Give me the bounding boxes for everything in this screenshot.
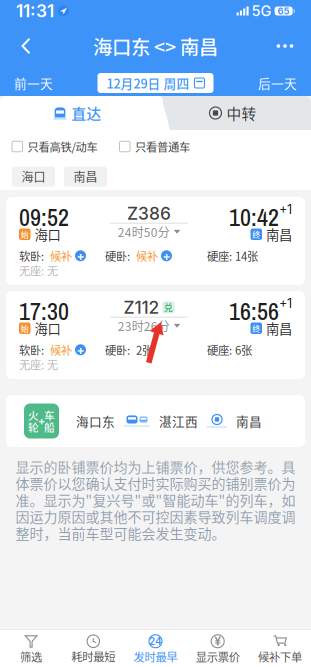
staticText: 轮 [28,421,39,432]
staticText: 10:42 [229,204,279,230]
staticText: 软卧: [19,344,47,355]
staticText: 24时50分 [118,226,170,238]
staticText: 候补 [50,344,72,355]
staticText: 12月29日 周四 [106,77,189,89]
staticText: 始 [21,230,29,238]
button[interactable]: 17:30 [6,291,305,379]
staticText: 5G [252,5,272,17]
staticText: 耗时最短 [71,650,115,662]
staticText: + [76,345,84,355]
staticText: 无座: 无 [19,264,58,276]
button[interactable]: 更多 [265,22,305,70]
staticText: 17:30 [19,298,69,324]
button[interactable]: 南昌 [64,166,107,186]
button[interactable]: 中转 [155,96,311,130]
staticText: 显示票价 [196,651,240,662]
staticText: Z112 [123,300,159,315]
staticText: 16:56 [229,298,279,324]
staticText: 中转 [226,106,256,120]
staticText: 筛选 [20,651,42,662]
button[interactable]: 返回 [6,22,46,70]
staticText: 终 [252,324,260,332]
staticText: +1 [279,204,292,215]
staticText: 硬座: 6张 [207,344,252,355]
staticText: 硬卧: [105,250,133,261]
staticText: 候补 [50,250,72,261]
staticText: ¥ [214,636,221,646]
staticText: 直达 [71,106,101,120]
staticText: Z386 [127,206,171,221]
button[interactable]: 只看高铁/动车 [12,141,97,152]
staticText: 海口 [34,227,60,241]
staticText: 海口东 [76,415,115,427]
staticText: + [76,251,84,261]
staticText: 2张 [136,344,153,355]
button[interactable]: ¥ [187,630,249,667]
staticText: 湛江西 [159,415,198,427]
staticText: 火 [28,410,39,420]
staticText: 软卧: [19,250,47,261]
staticText: 只看普通车 [135,141,190,152]
button[interactable]: 直达 [0,96,155,130]
staticText: 24 [149,637,162,645]
button[interactable]: 火 [6,395,305,447]
button[interactable]: 候补下单 [249,630,311,667]
staticText: 终 [252,230,260,238]
staticText: 11:31 [16,4,54,18]
staticText: 南昌 [236,415,262,427]
staticText: 硬座: 14张 [207,250,258,261]
staticText: 船 [44,421,55,432]
staticText: 候补 [136,250,158,261]
staticText: 南昌 [73,170,97,183]
button[interactable]: 24 [124,630,187,667]
staticText: 发时最早 [133,651,177,662]
staticText: 后一天 [258,77,297,89]
staticText: + [38,416,45,425]
staticText: 候补下单 [258,651,302,662]
staticText: 海口 [34,321,60,335]
button[interactable]: 海口 [12,166,55,186]
staticText: 只看高铁/动车 [27,141,97,152]
staticText: 海口 [21,170,45,183]
staticText: 23时26分 [118,320,170,332]
staticText: 始 [21,324,29,332]
staticText: +1 [279,298,292,309]
staticText: 显示的卧铺票价均为上铺票价，供您参考。具体票价以您确认支付时实际购买的铺别票价为… [15,458,295,541]
button[interactable]: 09:52 [6,197,305,285]
staticText: 09:52 [19,204,69,230]
button[interactable]: 耗时最短 [62,630,124,667]
staticText: + [162,251,170,261]
button[interactable]: 后一天 [246,70,309,96]
button[interactable]: 前一天 [2,70,65,96]
button[interactable]: 筛选 [0,630,62,667]
staticText: 南昌 [266,321,292,335]
staticText: 无座: 无 [19,358,58,370]
staticText: 兑 [164,303,173,312]
staticText: 硬卧: [105,344,133,355]
staticText: 车 [44,410,55,420]
staticText: 65 [278,7,290,15]
button[interactable]: 只看普通车 [119,141,190,152]
button[interactable]: 12月29日 周四 [97,73,213,93]
staticText: 南昌 [266,227,292,241]
staticText: 海口东 <> 南昌 [93,36,218,56]
staticText: 前一天 [14,77,53,89]
